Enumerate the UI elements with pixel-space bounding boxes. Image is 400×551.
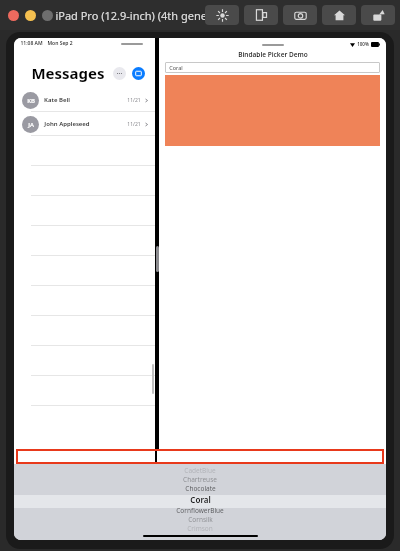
staticText: 11:08 AM [20, 40, 43, 47]
button[interactable]: JA [14, 112, 155, 136]
staticText: Kate Bell [44, 96, 70, 104]
button[interactable]: CornflowerBlue [14, 506, 386, 515]
staticText: KB [27, 97, 35, 105]
staticText: Bindable Picker Demo [238, 50, 308, 59]
staticText: CornflowerBlue [176, 506, 224, 515]
staticText: JA [28, 121, 34, 129]
button[interactable]: Home [322, 5, 356, 25]
button[interactable]: Share [361, 5, 395, 25]
staticText: Cornsilk [188, 515, 213, 524]
button[interactable]: Chocolate [14, 484, 386, 493]
button[interactable]: Rotate [244, 5, 278, 25]
button[interactable]: Minimize [25, 10, 36, 21]
button[interactable]: Coral [14, 493, 386, 506]
button[interactable]: Chartreuse [14, 475, 386, 484]
button[interactable]: Coral [165, 62, 380, 73]
staticText: Crimson [187, 524, 213, 533]
button[interactable]: Close [8, 10, 19, 21]
staticText: iPad Pro (12.9-inch) (4th gene… [55, 8, 216, 23]
staticText: Chartreuse [183, 475, 217, 484]
staticText: John Appleseed [44, 120, 90, 128]
button[interactable]: Screenshot [283, 5, 317, 25]
staticText: Coral [169, 64, 183, 71]
staticText: CadetBlue [184, 466, 216, 475]
staticText: Messages [31, 63, 105, 83]
staticText: 100% [357, 41, 369, 47]
staticText: 11/21 [127, 97, 141, 104]
staticText: 11/21 [127, 121, 141, 128]
button[interactable]: More [113, 67, 126, 80]
button[interactable]: KB [14, 88, 155, 112]
button[interactable]: Zoom [42, 10, 53, 21]
button[interactable]: Appearance [205, 5, 239, 25]
staticText: Chocolate [185, 484, 216, 493]
button[interactable]: New Message [132, 67, 145, 80]
button[interactable]: Cornsilk [14, 515, 386, 524]
staticText: Coral [190, 494, 211, 505]
staticText: Mon Sep 2 [47, 40, 73, 47]
button[interactable] [16, 449, 384, 464]
